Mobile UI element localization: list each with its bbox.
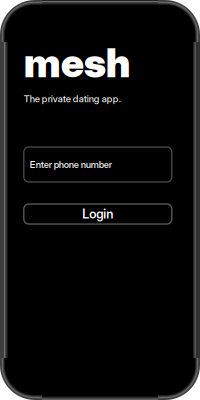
button[interactable]: Login [24, 204, 172, 224]
button[interactable]: Enter phone number [24, 147, 172, 182]
staticText: Enter phone number [30, 159, 112, 170]
staticText: The private dating app. [24, 93, 121, 104]
staticText: mesh [24, 38, 131, 87]
staticText: Login [82, 206, 113, 222]
